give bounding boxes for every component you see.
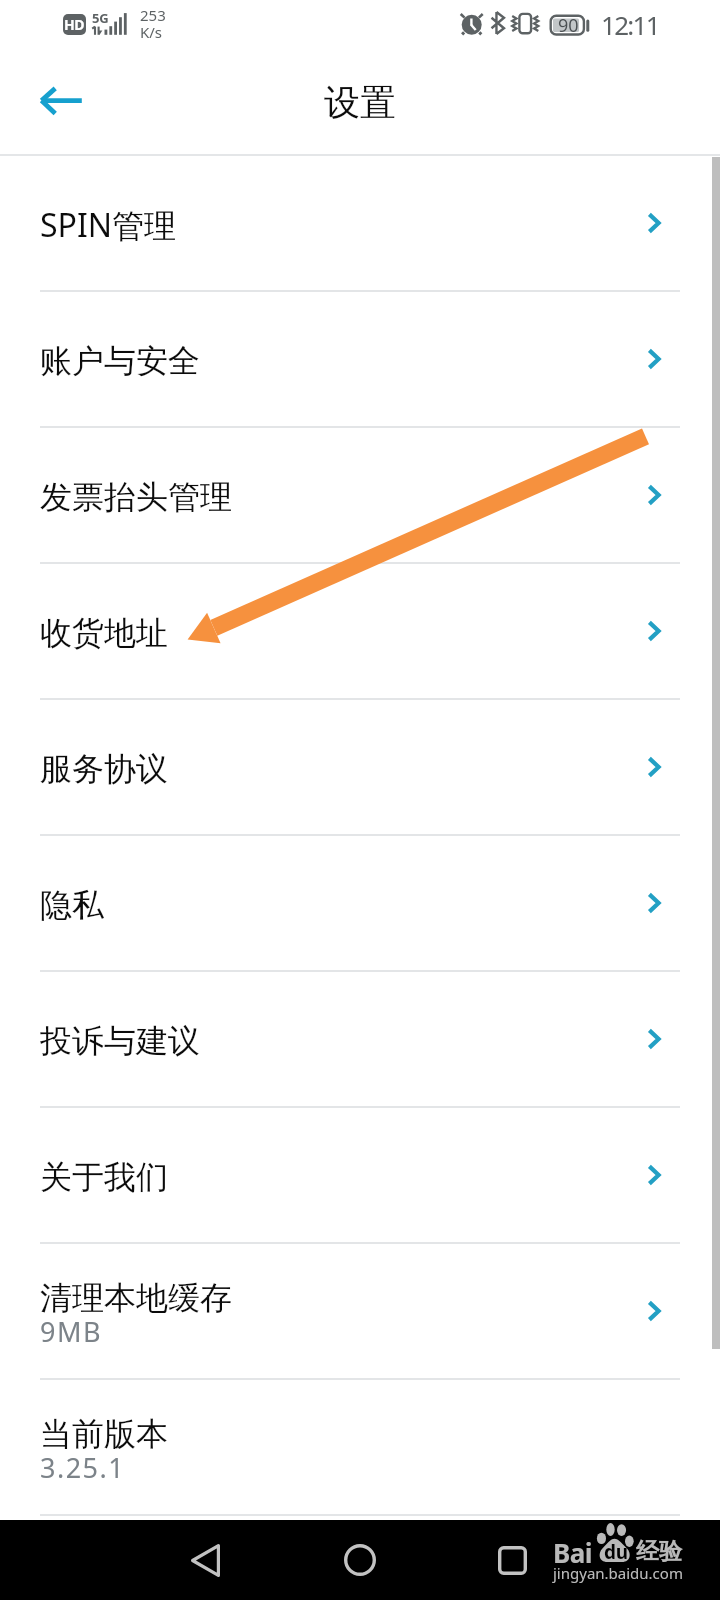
staticText: Bai [553,1535,592,1570]
button[interactable]: Recents [472,1520,552,1600]
button[interactable]: 收货地址 [0,564,720,698]
staticText: 当前版本 [40,1414,168,1454]
staticText: 90 [558,13,579,37]
staticText: 发票抬头管理 [40,477,232,517]
staticText: 5G [92,9,109,27]
staticText: K/s [140,22,163,42]
staticText: 隐私 [40,885,104,925]
staticText: 服务协议 [40,749,168,789]
staticText: 253 [140,5,166,25]
button[interactable]: SPIN管理 [0,156,720,290]
staticText: jingyan.baidu.com [553,1563,683,1583]
button[interactable]: 账户与安全 [0,292,720,426]
button[interactable]: 发票抬头管理 [0,428,720,562]
staticText: du [604,1539,628,1565]
staticText: 投诉与建议 [40,1021,200,1061]
staticText: 清理本地缓存 [40,1278,232,1318]
staticText: 3.25.1 [40,1449,126,1486]
button[interactable]: Home [320,1520,400,1600]
staticText: HD [64,15,85,34]
staticText: 9MB [40,1313,102,1350]
button[interactable]: 清理本地缓存 [0,1244,720,1378]
button[interactable]: 关于我们 [0,1108,720,1242]
staticText: 设置 [324,80,396,125]
button[interactable]: 当前版本 [0,1380,720,1514]
staticText: SPIN管理 [40,203,177,247]
button[interactable]: 隐私 [0,836,720,970]
button[interactable]: 投诉与建议 [0,972,720,1106]
button[interactable]: Back [165,1520,245,1600]
staticText: 账户与安全 [40,341,200,381]
staticText: 关于我们 [40,1157,168,1197]
staticText: 12:11 [601,7,659,42]
staticText: 收货地址 [40,613,168,653]
button[interactable]: 服务协议 [0,700,720,834]
staticText: 经验 [636,1537,682,1566]
button[interactable]: Back [17,57,105,145]
